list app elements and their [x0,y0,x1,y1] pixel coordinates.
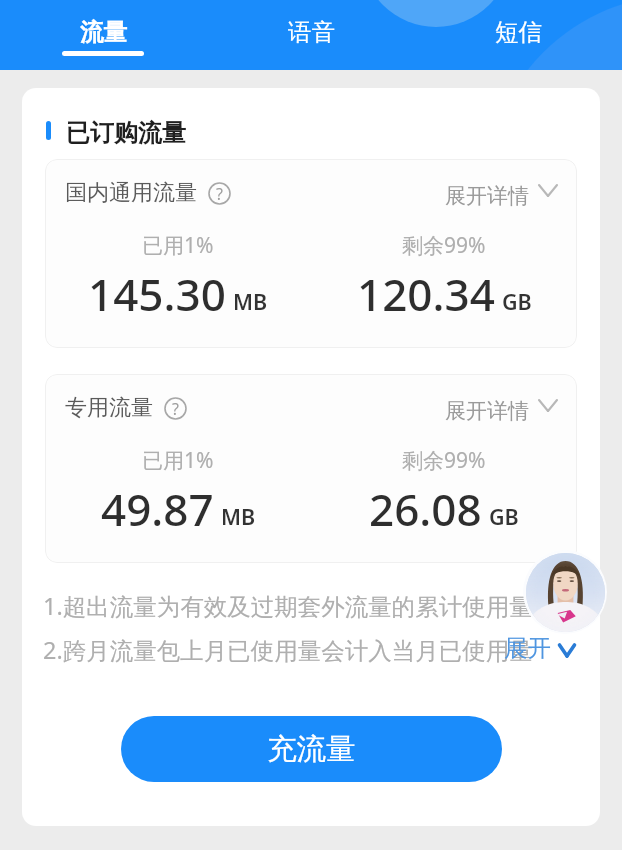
button[interactable]: 展开详情 [445,182,558,210]
staticText: 120.34 [357,264,495,324]
button[interactable]: 语音 [208,0,414,70]
staticText: 已订购流量 [66,118,186,148]
staticText: 49.87 [101,479,214,539]
button[interactable]: 展开 [504,633,575,663]
button[interactable]: 短信 [415,0,621,70]
staticText: ? [172,398,179,420]
staticText: 语音 [288,17,335,47]
staticText: 展开 [504,633,551,663]
staticText: GB [489,502,519,531]
staticText: 专用流量 [65,394,153,422]
button[interactable]: Customer service [523,550,607,634]
button[interactable]: 充流量 [121,716,502,782]
staticText: 26.08 [369,479,482,539]
staticText: 145.30 [88,264,226,324]
button[interactable]: 流量 [0,0,206,70]
staticText: 展开详情 [445,398,529,424]
button[interactable]: 专用流量 [45,374,577,563]
staticText: ? [216,183,223,205]
button[interactable]: 展开详情 [445,397,558,425]
staticText: 剩余99% [402,446,486,475]
staticText: 已用1% [142,446,214,475]
staticText: 已用1% [142,231,214,260]
staticText: 2.跨月流量包上月已使用量会计入当月已使用量 [43,634,533,666]
staticText: MB [221,502,256,531]
staticText: MB [233,287,268,316]
staticText: GB [502,287,532,316]
staticText: 流量 [80,17,127,47]
staticText: 短信 [495,17,542,47]
button[interactable]: 国内通用流量 [45,159,577,348]
staticText: 1.超出流量为有效及过期套外流量的累计使用量 [43,590,533,622]
staticText: 充流量 [267,731,356,768]
staticText: 展开详情 [445,183,529,209]
staticText: 国内通用流量 [65,179,197,207]
staticText: 剩余99% [402,231,486,260]
